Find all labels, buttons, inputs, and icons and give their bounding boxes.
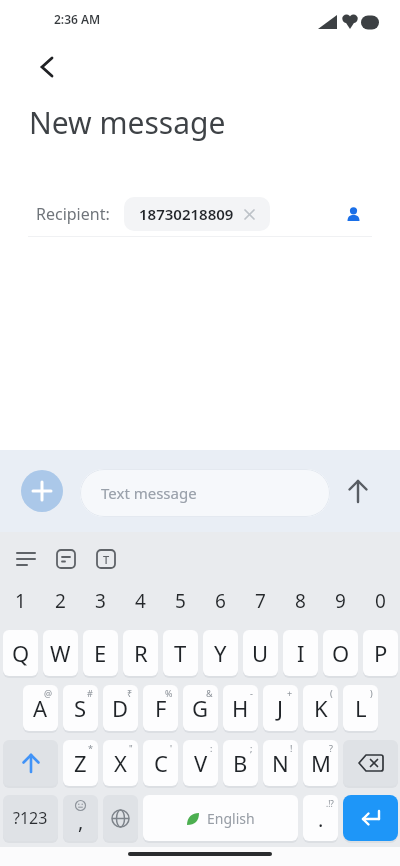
button[interactable] [103,795,138,841]
staticText: - [250,687,253,699]
staticText: 0 [375,588,386,614]
button[interactable]: , [63,795,98,841]
staticText: 5 [175,588,186,614]
button[interactable]: I [283,630,318,676]
staticText: ?123 [13,807,48,829]
button[interactable]: ?123 [3,795,58,841]
staticText: O [332,638,350,668]
button[interactable]: 5 [160,588,200,614]
button[interactable]: Q [3,630,38,676]
button[interactable]: H [223,685,258,731]
staticText: ₹ [127,687,133,699]
button[interactable]: .!? [303,795,338,841]
button[interactable]: G [183,685,218,731]
button[interactable]: Y [203,630,238,676]
staticText: 3 [95,588,106,614]
staticText: F [155,693,167,723]
staticText: 2 [55,588,66,614]
staticText: @ [44,687,53,699]
button[interactable]: U [243,630,278,676]
button[interactable]: O [323,630,358,676]
button[interactable]: P [363,630,398,676]
button[interactable]: M [303,740,338,786]
staticText: E [94,638,107,668]
staticText: U [252,638,269,668]
button[interactable]: L [343,685,378,731]
button[interactable]: 7 [240,588,280,614]
staticText: * [88,742,93,754]
button[interactable]: X [103,740,138,786]
staticText: T [174,638,187,668]
button[interactable]: A [23,685,58,731]
button[interactable]: 1 [0,588,40,614]
button[interactable] [3,740,58,786]
button[interactable]: Z [63,740,98,786]
button[interactable]: J [263,685,298,731]
button[interactable] [21,470,63,512]
staticText: X [114,748,127,778]
button[interactable]: W [43,630,78,676]
button[interactable]: R [123,630,158,676]
staticText: K [314,693,328,723]
button[interactable]: N [263,740,298,786]
staticText: S [74,693,87,723]
staticText: M [311,748,331,778]
staticText: ; [250,742,253,754]
button[interactable] [336,197,370,231]
staticText: . [318,806,324,833]
staticText: L [355,693,367,723]
button[interactable]: 9 [320,588,360,614]
staticText: N [272,748,289,778]
button[interactable]: C [143,740,178,786]
button[interactable] [343,740,398,786]
staticText: Text message [101,483,197,503]
staticText: ! [290,742,293,754]
staticText: ) [370,687,373,699]
button[interactable]: 18730218809 [124,197,270,231]
button[interactable]: D [103,685,138,731]
staticText: 7 [255,588,266,614]
button[interactable]: 6 [200,588,240,614]
staticText: .!? [326,798,334,809]
button[interactable] [340,464,376,518]
staticText: V [194,748,208,778]
staticText: H [232,693,249,723]
button[interactable] [50,543,82,575]
button[interactable]: 8 [280,588,320,614]
button[interactable] [28,48,66,86]
staticText: T [103,552,110,567]
staticText: 9 [335,588,346,614]
staticText: Q [12,638,30,668]
staticText: 2:36 AM [54,11,101,27]
button[interactable]: 3 [80,588,120,614]
staticText: & [206,687,213,699]
button[interactable]: 2 [40,588,80,614]
staticText: New message [29,102,226,143]
button[interactable]: T [90,543,122,575]
staticText: % [165,687,173,699]
staticText: I [297,638,305,668]
staticText: 1 [15,588,26,614]
button[interactable]: 4 [120,588,160,614]
button[interactable]: E [83,630,118,676]
button[interactable] [343,795,398,841]
staticText: , [78,808,84,835]
button[interactable]: V [183,740,218,786]
staticText: ? [329,742,333,754]
staticText: P [374,638,388,668]
button[interactable] [10,543,42,575]
staticText: D [112,693,129,723]
staticText: : [210,742,213,754]
button[interactable]: F [143,685,178,731]
button[interactable]: English [143,795,298,841]
staticText: # [87,687,93,699]
button[interactable]: K [303,685,338,731]
button[interactable]: T [163,630,198,676]
button[interactable]: 0 [360,588,400,614]
button[interactable]: B [223,740,258,786]
staticText: C [154,748,168,778]
staticText: B [233,748,248,778]
button[interactable]: Text message [80,469,330,517]
staticText: Z [74,748,87,778]
button[interactable]: S [63,685,98,731]
